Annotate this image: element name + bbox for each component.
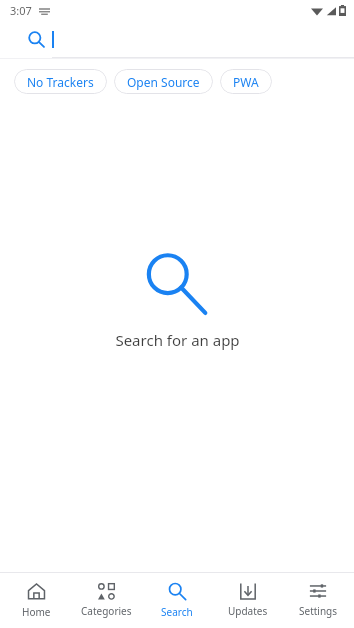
button[interactable]: No Trackers: [14, 69, 107, 94]
staticText: Settings: [299, 604, 338, 618]
button[interactable]: PWA: [220, 69, 272, 94]
button[interactable]: Search: [20, 23, 52, 55]
staticText: 3:07: [10, 3, 32, 18]
staticText: PWA: [233, 74, 259, 90]
button[interactable]: Search: [142, 572, 212, 628]
button[interactable]: Open Source: [114, 69, 213, 94]
staticText: Updates: [228, 604, 268, 618]
staticText: Categories: [81, 604, 132, 618]
staticText: Search for an app: [115, 330, 240, 350]
staticText: Open Source: [127, 74, 200, 90]
button[interactable]: Categories: [71, 572, 141, 628]
staticText: Home: [22, 605, 51, 619]
button[interactable]: Home: [1, 572, 71, 628]
button[interactable]: Updates: [213, 572, 283, 628]
button[interactable]: Settings: [283, 572, 353, 628]
staticText: No Trackers: [27, 74, 94, 90]
staticText: Search: [161, 605, 193, 619]
